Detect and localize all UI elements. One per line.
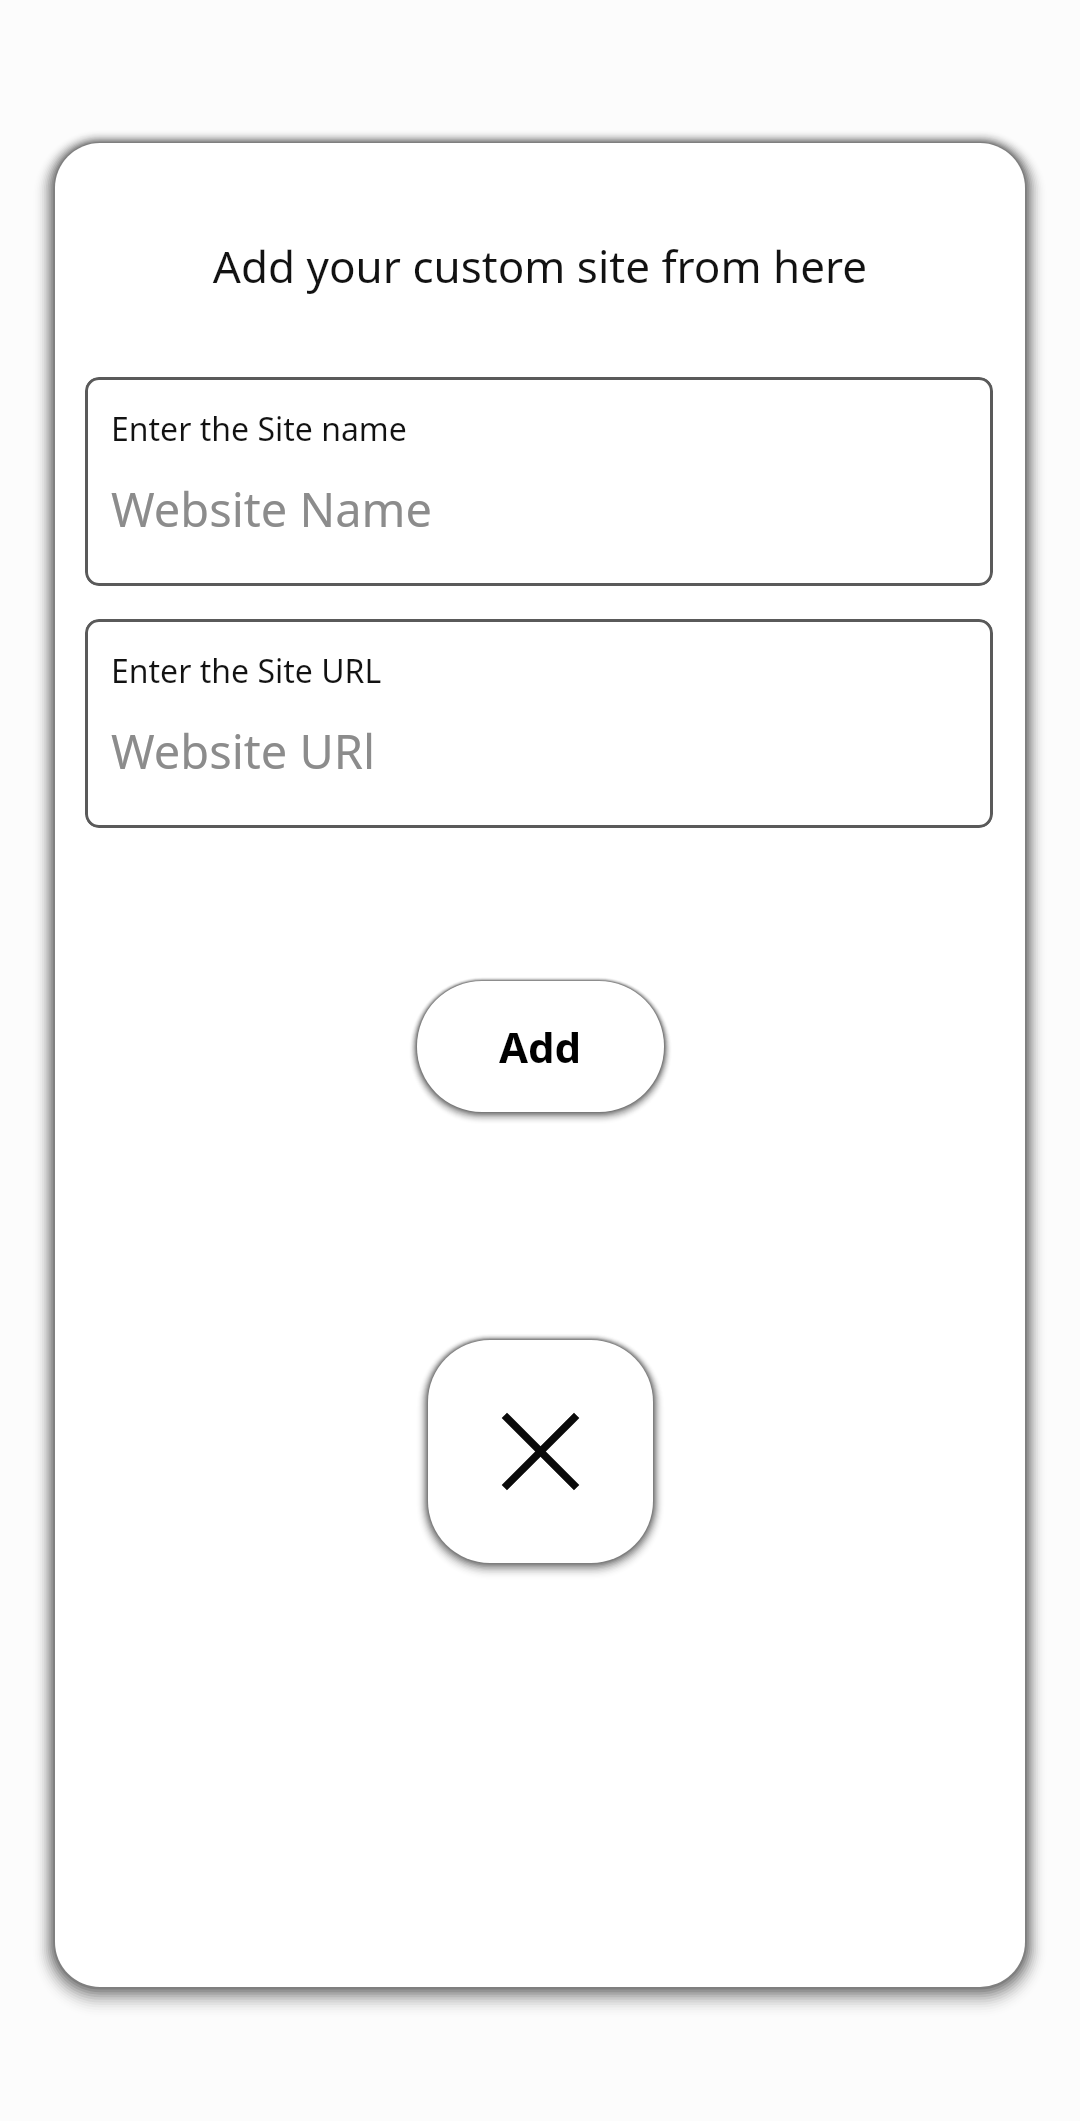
staticText: Enter the Site name xyxy=(111,407,407,451)
button[interactable]: Close xyxy=(428,1340,653,1563)
staticText: Website URl xyxy=(111,719,376,783)
staticText: Add xyxy=(499,1018,582,1075)
staticText: Website Name xyxy=(111,477,433,541)
staticText: Enter the Site URL xyxy=(111,649,382,693)
button[interactable]: Add xyxy=(417,981,664,1112)
button[interactable]: Enter the Site URL xyxy=(85,619,993,828)
button[interactable]: Enter the Site name xyxy=(85,377,993,586)
staticText: Add your custom site from here xyxy=(55,236,1025,296)
